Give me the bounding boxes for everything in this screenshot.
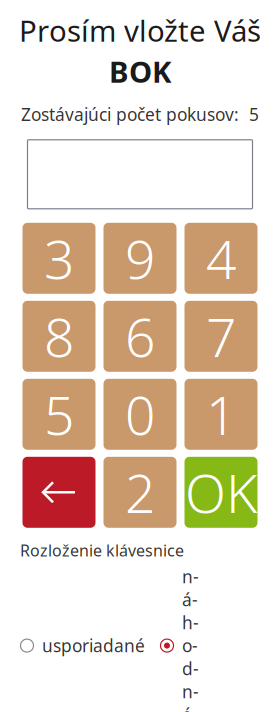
staticText: 1: [206, 379, 236, 450]
staticText: náhodné: [182, 565, 199, 712]
button[interactable]: 1: [184, 379, 257, 450]
button[interactable]: 9: [103, 223, 176, 294]
button[interactable]: OK: [184, 457, 257, 528]
staticText: Prosím vložte Váš: [19, 11, 261, 50]
staticText: 0: [125, 379, 155, 450]
staticText: OK: [185, 457, 257, 528]
staticText: BOK: [109, 52, 171, 91]
button[interactable]: 5: [22, 379, 95, 450]
button[interactable]: 8: [22, 301, 95, 372]
staticText: 8: [44, 301, 74, 372]
button[interactable]: 7: [184, 301, 257, 372]
staticText: 5: [44, 379, 74, 450]
button[interactable]: 4: [184, 223, 257, 294]
staticText: 4: [206, 223, 236, 294]
staticText: Rozloženie klávesnice: [20, 540, 184, 561]
button[interactable]: Backspace: [22, 457, 95, 528]
button[interactable]: 0: [103, 379, 176, 450]
staticText: Zostávajúci počet pokusov: 5: [21, 103, 259, 126]
staticText: usporiadané: [42, 634, 145, 657]
staticText: 9: [125, 223, 155, 294]
staticText: 6: [125, 301, 155, 372]
button[interactable]: náhodné: [160, 565, 210, 712]
button[interactable]: 2: [103, 457, 176, 528]
button[interactable]: 6: [103, 301, 176, 372]
button[interactable]: usporiadané: [20, 634, 160, 657]
staticText: 7: [206, 301, 236, 372]
staticText: 3: [44, 223, 74, 294]
button[interactable]: 3: [22, 223, 95, 294]
staticText: 2: [125, 457, 155, 528]
